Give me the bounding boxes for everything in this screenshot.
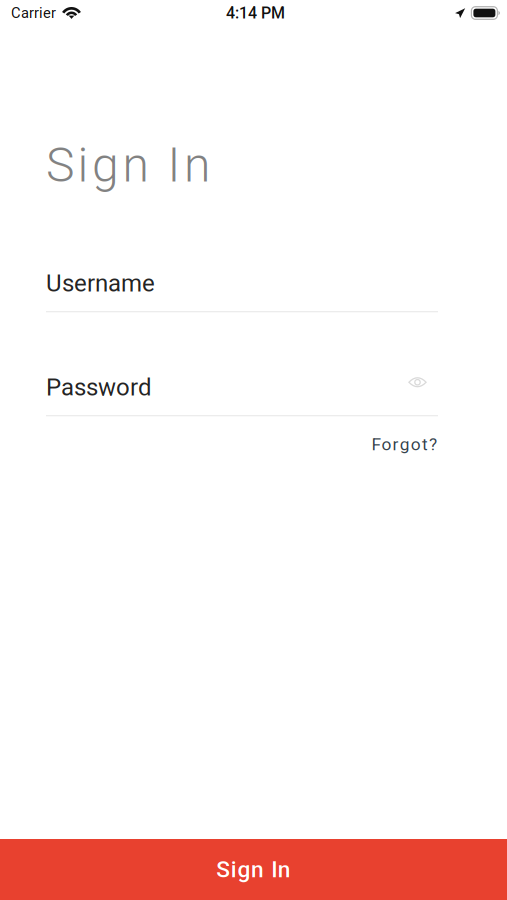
staticText: Sign In (216, 856, 291, 883)
button[interactable]: Show password (408, 378, 438, 396)
staticText: Sign In (46, 137, 210, 193)
staticText: Password (46, 373, 152, 401)
button[interactable]: Sign In (0, 839, 507, 900)
staticText: 4:14 PM (226, 4, 285, 22)
staticText: Carrier (11, 4, 56, 22)
staticText: Username (46, 269, 155, 297)
staticText: Forgot? (371, 434, 437, 454)
button[interactable]: Forgot? (371, 434, 437, 454)
